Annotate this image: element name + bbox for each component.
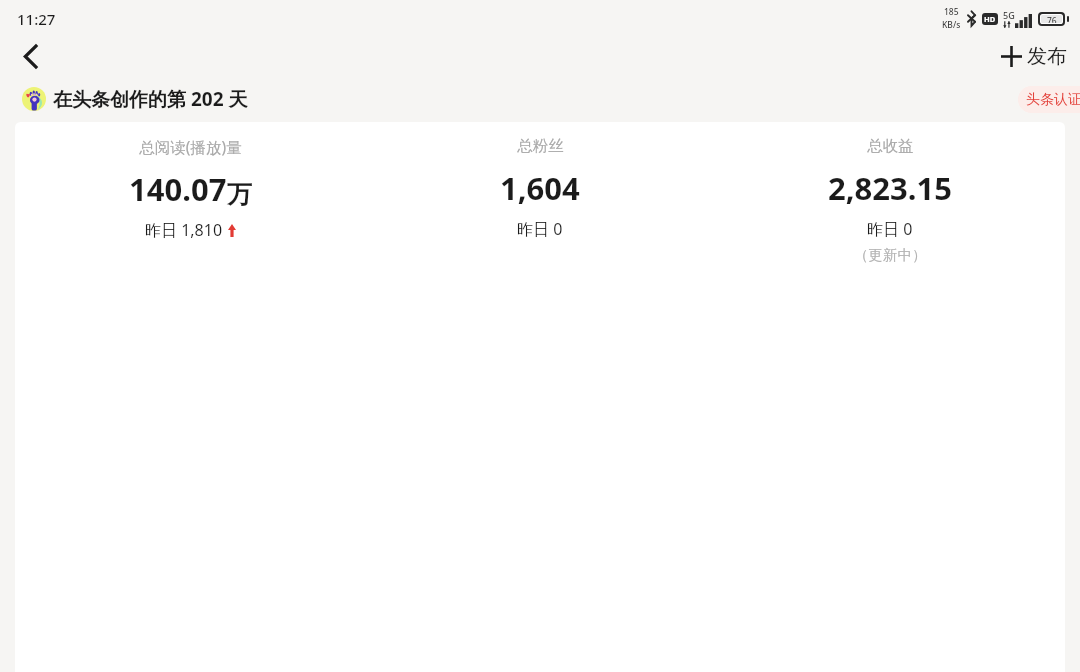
staticText: 昨日 1,810	[145, 219, 223, 241]
staticText: 头条认证	[1026, 91, 1080, 109]
staticText: HD	[984, 14, 996, 24]
staticText: 昨日 0	[867, 218, 913, 240]
button[interactable]: 总粉丝	[365, 136, 715, 240]
staticText: 在头条创作的第 202 天	[53, 86, 248, 112]
staticText: 5G	[1003, 9, 1015, 21]
staticText: （更新中）	[854, 246, 927, 264]
staticText: 76	[1047, 15, 1057, 23]
staticText: 185	[944, 6, 959, 18]
staticText: KB/s	[942, 19, 961, 31]
staticText: 总粉丝	[517, 136, 564, 156]
button[interactable]: 总阅读(播放)量	[15, 136, 365, 241]
button[interactable]: Back	[8, 37, 52, 75]
staticText: 昨日 0	[517, 218, 563, 240]
button[interactable]: 发布	[1001, 44, 1067, 69]
staticText: 总阅读(播放)量	[139, 136, 242, 157]
staticText: 2,823.15	[828, 167, 952, 209]
staticText: 总收益	[867, 136, 914, 156]
staticText: 发布	[1027, 44, 1067, 69]
button[interactable]: 总收益	[715, 136, 1065, 264]
staticText: 万	[227, 179, 252, 210]
staticText: 1,604	[500, 167, 580, 209]
button[interactable]: 头条认证	[1018, 86, 1080, 113]
staticText: 140.07	[129, 168, 227, 210]
staticText: 11:27	[17, 9, 56, 29]
